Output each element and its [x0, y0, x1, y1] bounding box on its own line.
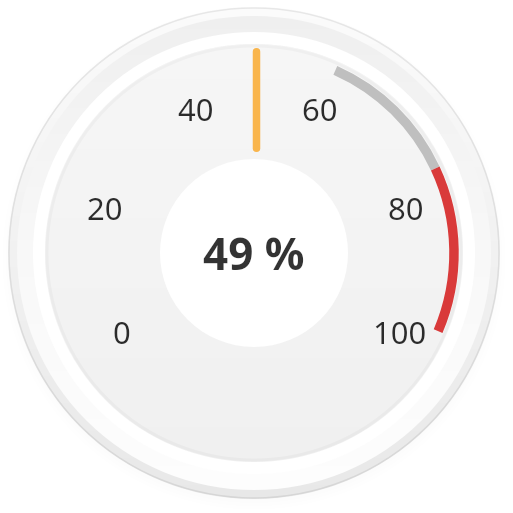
button[interactable]: Gauge showing 49 percent [0, 0, 513, 513]
